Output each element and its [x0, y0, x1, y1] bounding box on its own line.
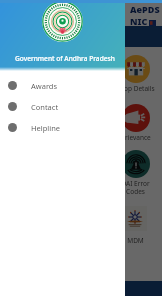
staticText: Contact: [31, 102, 59, 112]
button[interactable]: Contact: [0, 96, 125, 117]
button[interactable]: Transactions: [8, 104, 47, 142]
button[interactable]: Awards: [0, 75, 125, 96]
staticText: Shop Details: [116, 84, 155, 93]
staticText: MDM: [127, 236, 144, 245]
button[interactable]: Shop Details: [8, 55, 47, 93]
staticText: Awards: [31, 81, 58, 91]
staticText: Helpline: [31, 123, 61, 133]
staticText: Grievance: [120, 133, 151, 142]
button[interactable]: Shop Details: [116, 55, 155, 93]
button[interactable]: Grievance: [120, 104, 151, 142]
staticText: Government of Andhra Pradesh: [15, 54, 115, 63]
button[interactable]: Helpline: [0, 117, 125, 138]
button[interactable]: Power: [0, 26, 162, 47]
staticText: DAI Error Codes: [121, 179, 150, 196]
button[interactable]: MDM: [123, 206, 147, 245]
staticText: AePDS: [130, 3, 160, 15]
staticText: NIC: [130, 15, 148, 26]
button[interactable]: DAI Error Codes: [121, 150, 150, 196]
button[interactable]: Stock Details: [61, 55, 101, 93]
staticText: Shop Details: [8, 84, 47, 93]
